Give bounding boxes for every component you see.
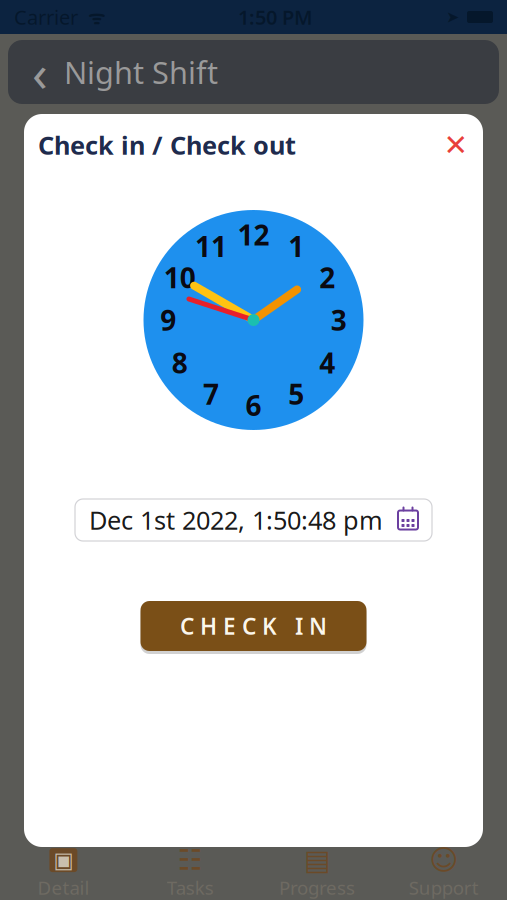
staticText: 7 <box>203 375 219 412</box>
button[interactable]: ▤ <box>253 848 380 900</box>
staticText: Dec 1st 2022, 1:50:48 pm <box>89 503 383 537</box>
staticText: Progress <box>279 875 355 900</box>
staticText: C H E C K I N <box>180 611 327 641</box>
button[interactable]: ▣ <box>0 848 127 900</box>
staticText: ✕ <box>443 128 468 162</box>
staticText: 1 <box>288 228 304 265</box>
staticText: Check in / Check out <box>38 128 296 162</box>
staticText: Detail <box>37 875 89 900</box>
staticText: ▣ <box>53 848 73 872</box>
staticText: ‹ <box>32 38 48 106</box>
staticText: ▤ <box>304 844 330 876</box>
staticText: ➤ <box>446 8 459 26</box>
staticText: 4 <box>319 344 335 381</box>
staticText: Carrier <box>14 4 78 30</box>
staticText: 12 <box>237 216 269 253</box>
staticText: 3 <box>331 301 347 339</box>
staticText: 10 <box>164 259 196 296</box>
staticText: ᯤ <box>78 5 105 29</box>
staticText: 5 <box>288 375 304 412</box>
staticText: 11 <box>195 228 227 265</box>
staticText: ☷ <box>178 844 203 876</box>
button[interactable]: ☺ <box>380 848 507 900</box>
staticText: 6 <box>245 387 261 424</box>
staticText: Support <box>409 875 479 900</box>
button[interactable]: Close <box>439 128 473 162</box>
button[interactable]: ☷ <box>127 848 254 900</box>
staticText: Night Shift <box>64 52 218 92</box>
button[interactable]: Back <box>18 44 62 100</box>
staticText: 2 <box>319 259 335 296</box>
staticText: 9 <box>160 301 176 339</box>
button[interactable]: C H E C K I N <box>137 598 369 654</box>
staticText: 8 <box>172 344 188 381</box>
staticText: 1:50 PM <box>238 4 313 30</box>
staticText: ☺ <box>429 844 458 876</box>
button[interactable]: Dec 1st 2022, 1:50:48 pm <box>75 499 432 541</box>
staticText: Tasks <box>167 875 214 900</box>
